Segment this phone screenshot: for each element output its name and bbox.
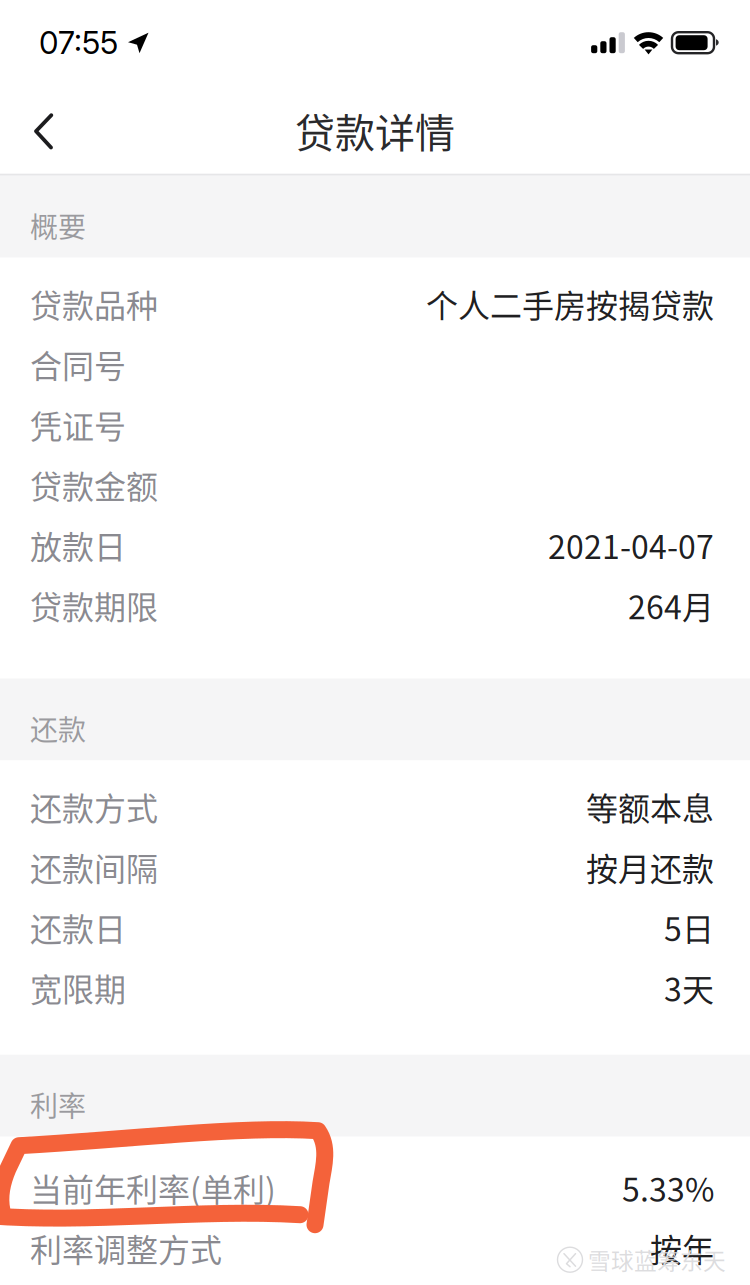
staticText: 贷款金额 [30,462,158,508]
staticText: 5.33% [622,1165,714,1211]
staticText: 雪球蓝筹东天 [588,1243,726,1276]
staticText: 按月还款 [586,844,714,890]
button[interactable]: 宽限期 [0,957,750,1018]
staticText: 当前年利率(单利) [30,1165,276,1211]
staticText: 还款日 [30,904,126,950]
staticText: 概要 [30,205,86,246]
button[interactable]: 贷款金额 [0,455,750,515]
button[interactable]: 利率调整方式 [0,1218,750,1278]
button[interactable]: 还款日 [0,897,750,957]
button[interactable]: 合同号 [0,334,750,394]
staticText: 5日 [664,904,714,950]
staticText: 宽限期 [30,964,126,1011]
staticText: 还款方式 [30,783,158,830]
button[interactable]: Back [0,87,81,173]
staticText: 贷款品种 [30,281,158,327]
staticText: 合同号 [30,341,126,387]
staticText: 利率调整方式 [30,1225,222,1271]
button[interactable]: 贷款品种 [0,274,750,334]
staticText: 贷款期限 [30,582,158,628]
staticText: 还款 [30,708,86,748]
staticText: 还款间隔 [30,844,158,890]
button[interactable]: 放款日 [0,515,750,575]
staticText: 264月 [628,582,714,628]
button[interactable]: 还款间隔 [0,837,750,897]
staticText: 2021-04-07 [548,522,714,568]
staticText: 贷款详情 [295,101,455,159]
button[interactable]: 当前年利率(单利) [0,1158,750,1218]
staticText: 利率 [30,1084,86,1125]
staticText: 凭证号 [30,401,126,448]
button[interactable]: 贷款期限 [0,575,750,635]
staticText: 3天 [664,964,714,1011]
staticText: 个人二手房按揭贷款 [426,281,714,327]
button[interactable]: 还款方式 [0,776,750,837]
staticText: 放款日 [30,522,126,568]
staticText: 等额本息 [586,783,714,830]
staticText: 07:55 [39,24,118,62]
button[interactable]: 凭证号 [0,394,750,455]
staticText: 按年 [650,1225,714,1271]
